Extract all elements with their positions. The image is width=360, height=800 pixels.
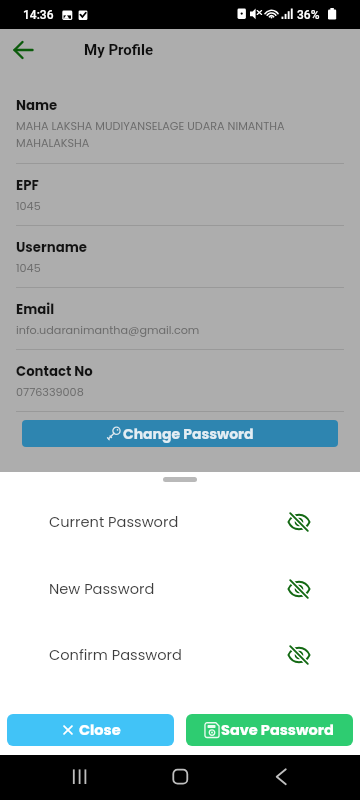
staticText: Confirm Password bbox=[49, 645, 285, 665]
staticText: My Profile bbox=[84, 41, 154, 59]
staticText: Username bbox=[16, 238, 87, 257]
staticText: 1045 bbox=[16, 198, 41, 214]
staticText: MAHALAKSHA bbox=[16, 135, 90, 151]
button[interactable]: Toggle password visibility bbox=[285, 575, 313, 603]
staticText: Email bbox=[16, 300, 55, 319]
staticText: 0776339008 bbox=[16, 384, 84, 400]
button[interactable]: Close bbox=[7, 714, 174, 746]
staticText: 1045 bbox=[16, 260, 41, 276]
staticText: Current Password bbox=[49, 512, 285, 532]
staticText: EPF bbox=[16, 176, 39, 195]
staticText: Name bbox=[16, 96, 58, 115]
staticText: Close bbox=[79, 720, 121, 740]
button[interactable]: Current Password bbox=[0, 500, 360, 544]
button[interactable]: Change Password bbox=[22, 420, 338, 447]
staticText: Save Password bbox=[221, 720, 334, 740]
staticText: MAHA LAKSHA MUDIYANSELAGE UDARA NIMANTHA bbox=[16, 118, 285, 134]
staticText: Change Password bbox=[123, 424, 254, 444]
button[interactable]: Confirm Password bbox=[0, 633, 360, 677]
staticText: 14:36 bbox=[23, 8, 54, 22]
staticText: 36% bbox=[297, 8, 320, 22]
button[interactable]: Save Password bbox=[186, 714, 353, 746]
button[interactable]: Toggle password visibility bbox=[285, 508, 313, 536]
button[interactable]: New Password bbox=[0, 567, 360, 611]
staticText: New Password bbox=[49, 579, 285, 599]
staticText: Contact No bbox=[16, 362, 93, 381]
staticText: info.udaranimantha@gmail.com bbox=[16, 322, 200, 338]
button[interactable]: Back bbox=[5, 32, 41, 68]
button[interactable]: Toggle password visibility bbox=[285, 641, 313, 669]
